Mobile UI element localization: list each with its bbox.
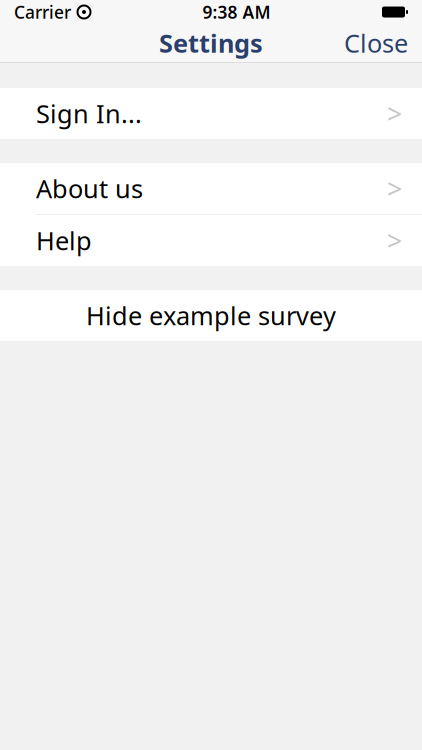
- staticText: >: [387, 96, 402, 131]
- button[interactable]: Help: [0, 215, 422, 266]
- staticText: Settings: [159, 26, 263, 60]
- staticText: Hide example survey: [86, 299, 336, 332]
- button[interactable]: Hide example survey: [0, 290, 422, 341]
- staticText: Sign In...: [36, 97, 142, 130]
- staticText: 9:38 AM: [202, 0, 270, 23]
- staticText: About us: [36, 172, 143, 205]
- staticText: >: [387, 171, 402, 206]
- staticText: Help: [36, 224, 92, 257]
- button[interactable]: About us: [0, 163, 422, 214]
- button[interactable]: Close: [330, 18, 422, 68]
- button[interactable]: Sign In...: [0, 88, 422, 139]
- staticText: Carrier: [14, 0, 71, 23]
- staticText: Close: [344, 26, 408, 60]
- staticText: >: [387, 223, 402, 258]
